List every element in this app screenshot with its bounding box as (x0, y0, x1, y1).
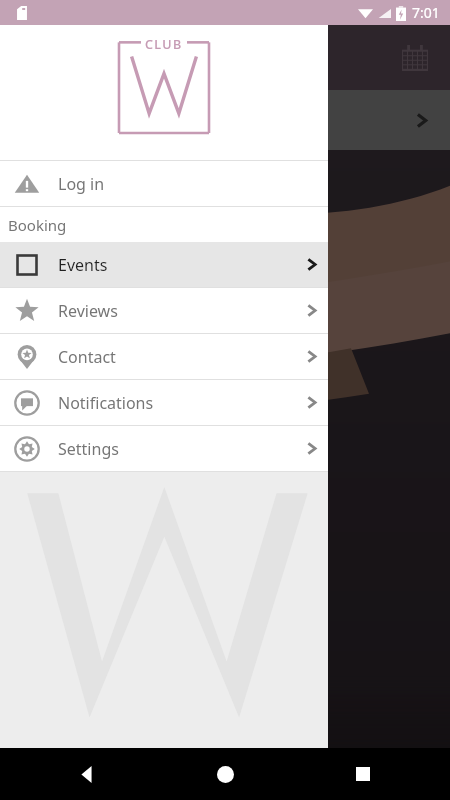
staticText: Settings (58, 438, 119, 460)
button[interactable]: Contact (0, 334, 328, 379)
button[interactable]: Next (406, 105, 436, 135)
button[interactable]: Events (0, 242, 328, 287)
button[interactable]: Settings (0, 426, 328, 471)
button[interactable]: Recent apps (346, 757, 380, 791)
staticText: Notifications (58, 392, 154, 414)
staticText: Reviews (58, 300, 118, 322)
staticText: CLUB (145, 36, 183, 53)
staticText: 7:01 (412, 3, 440, 22)
staticText: Log in (58, 173, 105, 195)
button[interactable]: Home (208, 757, 242, 791)
button[interactable]: Calendar (398, 41, 432, 75)
staticText: Contact (58, 346, 116, 368)
staticText: 1/15/18 - 1/17/18 (16, 100, 129, 119)
staticText: Booking (8, 215, 67, 235)
button[interactable]: Back (70, 757, 104, 791)
button[interactable]: Reviews (0, 288, 328, 333)
button[interactable]: Notifications (0, 380, 328, 425)
button[interactable]: Log in (0, 161, 328, 206)
staticText: 9:00 AM - 6:00 PM (16, 122, 134, 141)
staticText: Events (58, 254, 108, 276)
